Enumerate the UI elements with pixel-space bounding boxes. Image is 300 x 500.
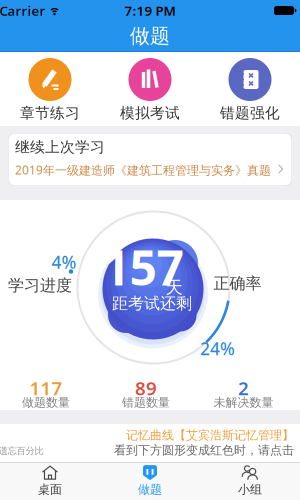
staticText: 4% bbox=[51, 250, 76, 273]
staticText: 2019年一级建造师《建筑工程管理与实务》真题 bbox=[15, 162, 271, 178]
button[interactable]: 错题强化 bbox=[200, 58, 300, 122]
staticText: 看到下方圆形变成红色时，请点击 bbox=[114, 443, 294, 458]
staticText: 模拟考试 bbox=[120, 104, 180, 122]
staticText: 遗忘百分比 bbox=[0, 445, 43, 457]
staticText: 章节练习 bbox=[20, 104, 80, 122]
staticText: 错题强化 bbox=[220, 104, 280, 122]
staticText: 7:19 PM bbox=[124, 2, 175, 19]
staticText: 小组 bbox=[238, 482, 262, 497]
staticText: 未解决数量 bbox=[213, 395, 273, 410]
staticText: 做题 bbox=[138, 482, 162, 497]
staticText: 天 bbox=[165, 277, 182, 298]
button[interactable]: 章节练习 bbox=[0, 58, 100, 122]
staticText: 157 bbox=[102, 235, 183, 299]
staticText: 继续上次学习 bbox=[15, 138, 105, 156]
button[interactable]: 桌面 bbox=[0, 462, 100, 500]
staticText: 学习进度 bbox=[8, 276, 72, 295]
staticText: 距考试还剩 bbox=[112, 294, 192, 313]
staticText: 记忆曲线【艾宾浩斯记忆管理】 bbox=[126, 428, 294, 443]
button[interactable]: 小组 bbox=[200, 462, 300, 500]
staticText: 24% bbox=[200, 337, 235, 360]
button[interactable]: 模拟考试 bbox=[100, 58, 200, 122]
button[interactable]: 做题 bbox=[100, 462, 200, 500]
staticText: 正确率 bbox=[213, 274, 261, 293]
staticText: 桌面 bbox=[38, 482, 62, 497]
staticText: 89 bbox=[135, 376, 157, 400]
button[interactable]: 继续上次学习 bbox=[8, 133, 292, 186]
staticText: 错题数量 bbox=[122, 395, 170, 410]
staticText: 2 bbox=[238, 376, 249, 400]
staticText: 做题数量 bbox=[22, 395, 70, 410]
staticText: Carrier bbox=[0, 2, 45, 19]
staticText: 117 bbox=[29, 376, 62, 400]
staticText: 做题 bbox=[130, 24, 170, 48]
